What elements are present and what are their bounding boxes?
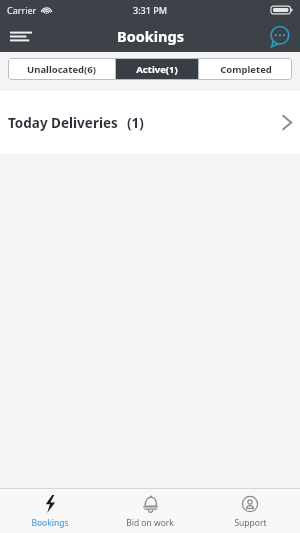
button[interactable]: Unallocated(6) <box>8 58 115 80</box>
button[interactable]: Bid on work <box>100 489 200 533</box>
button[interactable]: Today Deliveries <box>0 91 300 154</box>
staticText: Carrier <box>7 4 37 16</box>
button[interactable]: Menu <box>0 20 42 52</box>
staticText: Today Deliveries <box>8 114 118 132</box>
staticText: Completed <box>220 63 272 76</box>
staticText: Unallocated(6) <box>27 63 96 76</box>
staticText: Support <box>234 517 267 529</box>
button[interactable]: Bookings <box>0 489 100 533</box>
staticText: Bookings <box>31 517 69 529</box>
staticText: (1) <box>127 114 144 132</box>
button[interactable]: Support <box>200 489 300 533</box>
button[interactable]: Active(1) <box>116 58 198 80</box>
staticText: Bookings <box>117 26 184 46</box>
staticText: Active(1) <box>136 63 178 76</box>
button[interactable]: Messages <box>258 20 300 52</box>
button[interactable]: Completed <box>199 58 292 80</box>
staticText: Bid on work <box>126 517 174 529</box>
staticText: 3:31 PM <box>133 4 167 16</box>
